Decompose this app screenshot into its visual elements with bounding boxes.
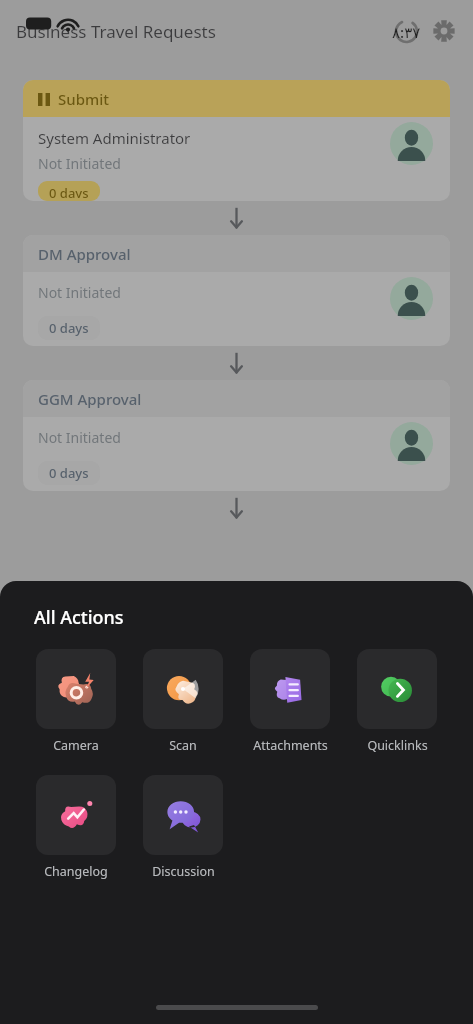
staticText: Submit <box>58 89 109 109</box>
button[interactable]: Changelog <box>36 775 116 880</box>
staticText: 0 days <box>49 184 89 198</box>
staticText: All Actions <box>34 605 124 630</box>
staticText: Changelog <box>44 863 108 880</box>
staticText: Camera <box>53 737 99 754</box>
staticText: Not Initiated <box>38 283 121 302</box>
button[interactable]: Quicklinks <box>357 649 437 754</box>
button[interactable]: DM Approval <box>23 235 450 346</box>
staticText: Business Travel Requests <box>16 20 216 43</box>
button[interactable]: GGM Approval <box>23 380 450 491</box>
button[interactable]: Camera <box>36 649 116 754</box>
staticText: GGM Approval <box>38 389 142 409</box>
staticText: 0 days <box>49 464 89 482</box>
button[interactable]: Attachments <box>250 649 330 754</box>
staticText: Not Initiated <box>38 428 121 447</box>
staticText: Discussion <box>152 863 215 880</box>
staticText: 0 days <box>49 319 89 337</box>
staticText: Attachments <box>253 737 328 754</box>
staticText: Scan <box>169 737 197 754</box>
button[interactable]: Settings <box>427 14 461 48</box>
button[interactable]: Discussion <box>143 775 223 880</box>
staticText: System Administrator <box>38 128 191 148</box>
staticText: Not Initiated <box>38 154 121 173</box>
button[interactable]: Submit <box>23 80 450 201</box>
button[interactable]: Scan <box>143 649 223 754</box>
staticText: Quicklinks <box>367 737 428 754</box>
staticText: ٨:٣٧ <box>392 22 421 42</box>
staticText: DM Approval <box>38 244 131 264</box>
